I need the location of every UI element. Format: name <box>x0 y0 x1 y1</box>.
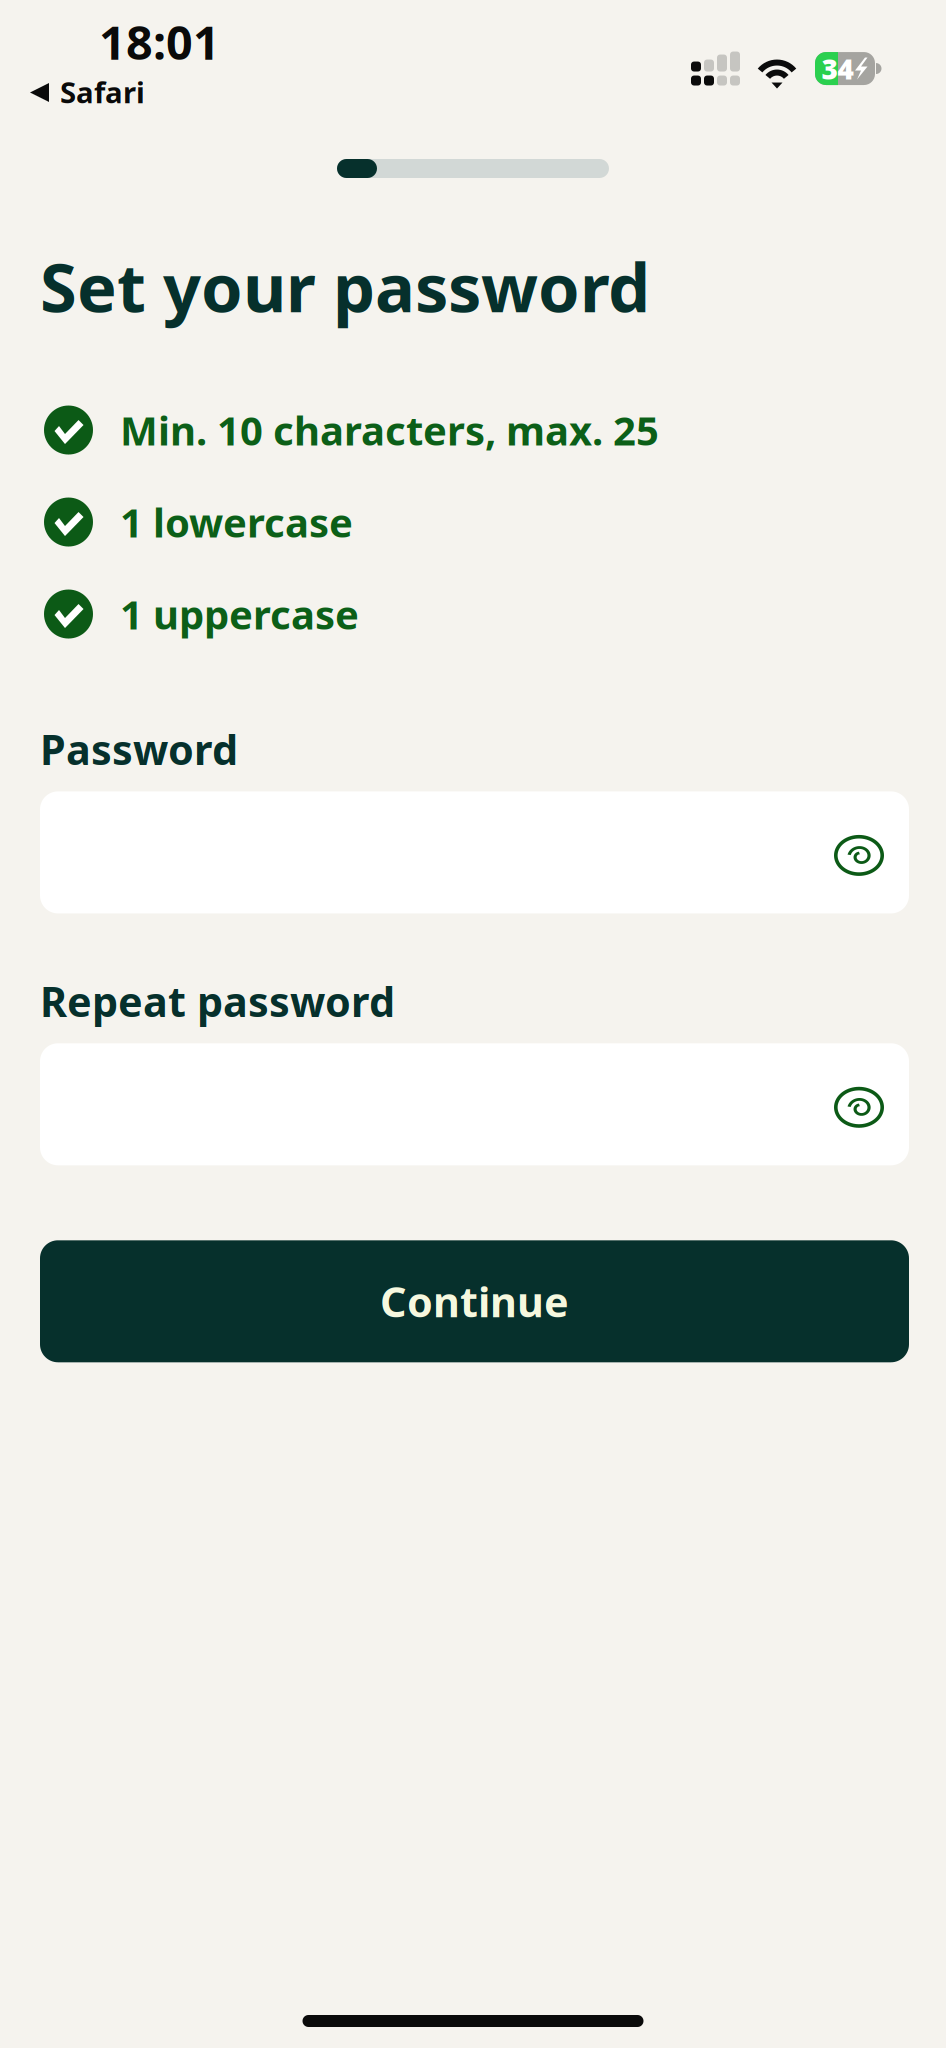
staticText: 34 <box>821 50 853 87</box>
button[interactable]: Safari <box>0 72 145 111</box>
staticText: Repeat password <box>40 973 395 1028</box>
staticText: 1 lowercase <box>120 495 353 549</box>
staticText: Continue <box>380 1274 569 1329</box>
staticText: Min. 10 characters, max. 25 <box>120 403 659 457</box>
staticText: 18:01 <box>99 10 220 72</box>
button[interactable]: Show repeat password <box>832 1043 909 1165</box>
staticText: 1 uppercase <box>120 587 359 641</box>
staticText: Password <box>40 721 238 776</box>
button[interactable]: Password <box>40 791 909 913</box>
button[interactable]: Continue <box>40 1240 909 1362</box>
button[interactable]: Repeat password <box>40 1043 909 1165</box>
button[interactable]: Show password <box>832 791 909 913</box>
staticText: Set your password <box>40 242 650 330</box>
staticText: Safari <box>60 72 145 111</box>
